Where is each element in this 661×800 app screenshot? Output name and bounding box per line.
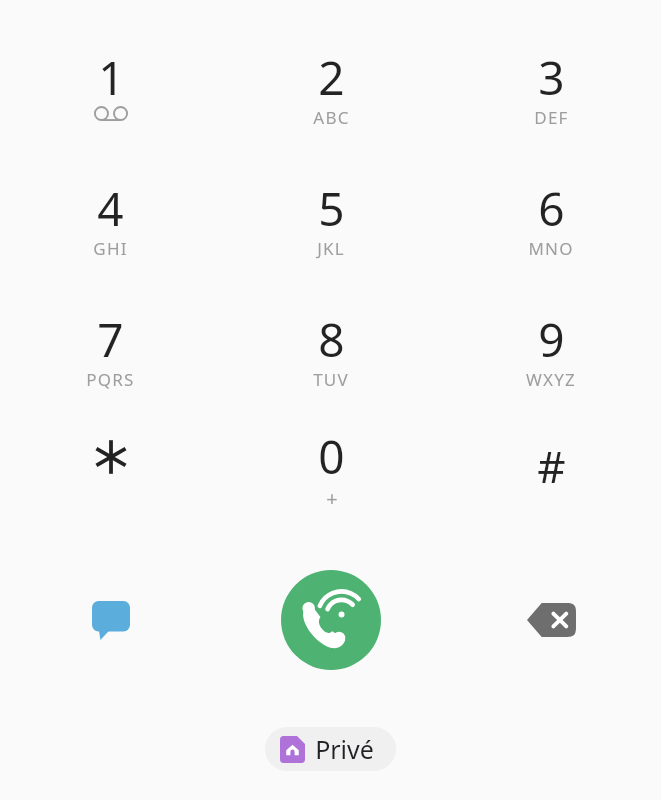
staticText: WXYZ (526, 368, 576, 391)
button[interactable]: 7 (0, 308, 221, 418)
button[interactable]: 8 (221, 308, 441, 418)
staticText: 2 (318, 46, 345, 106)
staticText: # (537, 436, 566, 496)
staticText: JKL (317, 237, 345, 260)
staticText: TUV (313, 368, 349, 391)
button[interactable]: 3 (441, 46, 661, 156)
other: Voicemail (93, 106, 129, 123)
button[interactable]: 0 (221, 425, 441, 530)
button[interactable]: Star (0, 425, 221, 530)
button[interactable]: Call (281, 570, 381, 670)
staticText: DEF (534, 106, 569, 129)
button[interactable]: 2 (221, 46, 441, 156)
staticText: 5 (318, 177, 345, 237)
button[interactable]: 1 (0, 46, 221, 156)
button[interactable]: Send message (82, 591, 140, 649)
staticText: 8 (318, 308, 345, 368)
staticText: 4 (97, 177, 124, 237)
staticText: + (326, 485, 338, 512)
staticText: PQRS (86, 368, 135, 391)
button[interactable]: Backspace (519, 588, 583, 652)
staticText: 1 (98, 46, 125, 106)
button[interactable]: 4 (0, 177, 221, 287)
staticText: 3 (538, 46, 565, 106)
button[interactable]: 9 (441, 308, 661, 418)
staticText: Privé (315, 732, 374, 766)
staticText: 7 (97, 308, 124, 368)
staticText: GHI (93, 237, 128, 260)
button[interactable]: Pound (441, 425, 661, 530)
button[interactable]: Privé (265, 727, 396, 771)
button[interactable]: 5 (221, 177, 441, 287)
staticText: 0 (318, 425, 345, 485)
staticText: ABC (313, 106, 350, 129)
staticText: MNO (528, 237, 574, 260)
staticText: 6 (538, 177, 565, 237)
button[interactable]: 6 (441, 177, 661, 287)
staticText: 9 (538, 308, 565, 368)
